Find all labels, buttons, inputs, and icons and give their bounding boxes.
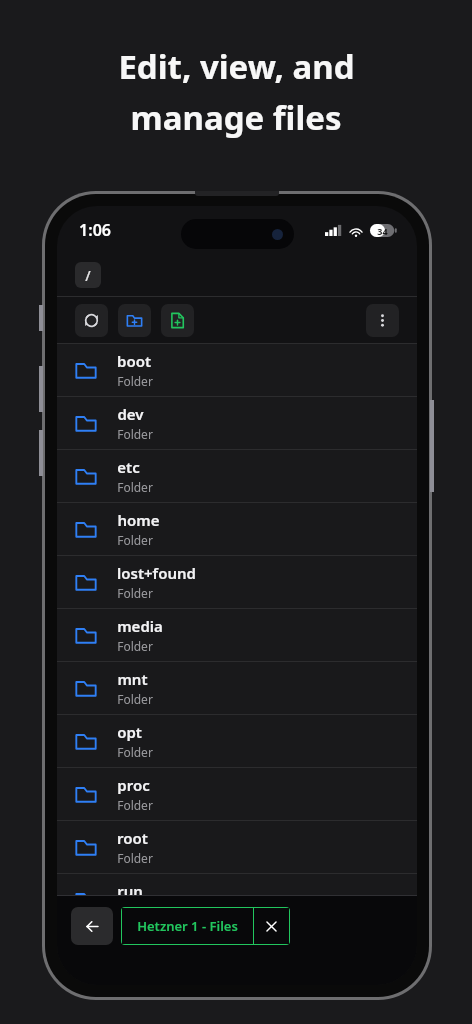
button[interactable]: boot — [57, 344, 417, 396]
staticText: Folder — [117, 479, 153, 495]
staticText: Folder — [117, 903, 153, 919]
staticText: etc — [117, 457, 140, 477]
staticText: root — [117, 828, 148, 848]
staticText: run — [117, 881, 143, 901]
button[interactable]: dev — [57, 397, 417, 449]
staticText: Folder — [117, 797, 153, 813]
staticText: Folder — [117, 850, 153, 866]
staticText: Hetzner 1 - Files — [137, 917, 238, 935]
button[interactable]: opt — [57, 715, 417, 767]
staticText: Folder — [117, 426, 153, 442]
button[interactable]: / — [75, 262, 101, 288]
button[interactable]: media — [57, 609, 417, 661]
staticText: opt — [117, 722, 142, 742]
button[interactable]: etc — [57, 450, 417, 502]
button[interactable]: New file — [161, 304, 194, 337]
staticText: Folder — [117, 585, 153, 601]
staticText: media — [117, 616, 163, 636]
button[interactable]: root — [57, 821, 417, 873]
staticText: Edit, view, and — [118, 44, 355, 89]
button[interactable]: More options — [366, 304, 399, 337]
staticText: lost+found — [117, 563, 196, 583]
button[interactable]: home — [57, 503, 417, 555]
staticText: proc — [117, 775, 150, 795]
staticText: 1:06 — [79, 219, 111, 241]
staticText: dev — [117, 404, 144, 424]
staticText: Folder — [117, 373, 153, 389]
button[interactable]: lost+found — [57, 556, 417, 608]
staticText: Folder — [117, 744, 153, 760]
staticText: mnt — [117, 669, 148, 689]
staticText: manage files — [130, 95, 342, 140]
button[interactable]: Refresh — [75, 304, 108, 337]
button[interactable]: Hetzner 1 - Files — [137, 917, 238, 935]
staticText: Folder — [117, 532, 153, 548]
staticText: 34 — [377, 225, 388, 237]
button[interactable]: Close — [254, 908, 289, 944]
staticText: home — [117, 510, 160, 530]
staticText: Folder — [117, 638, 153, 654]
button[interactable]: run — [57, 874, 417, 926]
button[interactable]: mnt — [57, 662, 417, 714]
button[interactable]: proc — [57, 768, 417, 820]
staticText: boot — [117, 351, 151, 371]
staticText: Folder — [117, 691, 153, 707]
button[interactable]: New folder — [118, 304, 151, 337]
button[interactable]: Back — [71, 907, 113, 945]
staticText: / — [85, 266, 91, 285]
